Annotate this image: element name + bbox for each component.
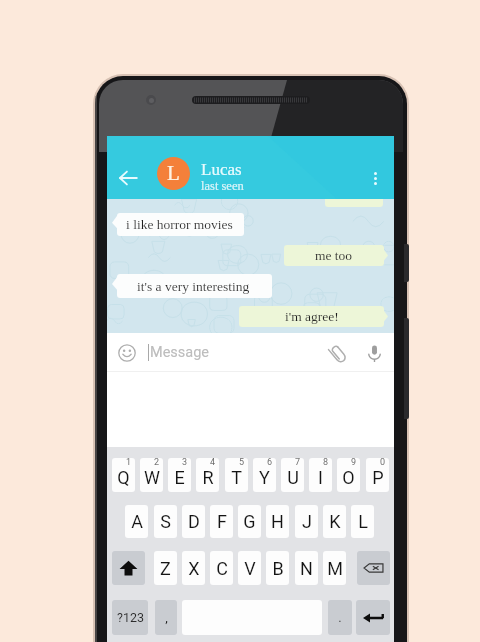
button[interactable]: U [281,458,304,492]
button[interactable]: K [323,505,346,538]
staticText: S [160,511,171,532]
staticText: E [174,467,185,488]
button[interactable]: P [366,458,389,492]
staticText: R [202,467,214,488]
staticText: X [188,558,200,579]
staticText: F [217,511,227,532]
button[interactable]: Z [154,551,177,585]
staticText: P [372,467,384,488]
button[interactable]: W [140,458,163,492]
staticText: 2 [154,458,160,468]
button[interactable]: X [182,551,205,585]
staticText: O [342,467,355,488]
staticText: , [165,610,168,625]
staticText: 5 [239,458,245,468]
button[interactable]: O [337,458,360,492]
staticText: W [144,467,160,488]
button[interactable]: M [323,551,346,585]
button[interactable]: Emoji [117,343,137,363]
staticText: L [167,161,180,184]
staticText: I [318,467,323,488]
staticText: 7 [295,458,301,468]
button[interactable]: B [266,551,289,585]
button[interactable]: I [309,458,332,492]
staticText: 0 [380,458,386,468]
staticText: J [302,511,312,532]
button[interactable]: me too [284,245,384,266]
staticText: 4 [210,458,216,468]
button[interactable]: i like horror movies [117,213,244,236]
button[interactable]: A [125,505,148,538]
staticText: Z [160,558,171,579]
button[interactable]: S [154,505,177,538]
staticText: me too [315,248,353,263]
button[interactable]: D [182,505,205,538]
button[interactable]: F [210,505,233,538]
button[interactable]: Contact avatar [157,157,190,190]
staticText: A [131,511,143,532]
button[interactable]: Backspace [357,551,390,585]
staticText: 3 [182,458,188,468]
button[interactable]: V [238,551,261,585]
button[interactable]: E [168,458,191,492]
button[interactable]: C [210,551,233,585]
button[interactable]: R [196,458,219,492]
button[interactable]: , [155,600,177,635]
staticText: 9 [351,458,357,468]
staticText: i like horror movies [126,217,233,232]
staticText: 1 [126,458,132,468]
staticText: G [243,511,256,532]
button[interactable]: Shift [112,551,145,585]
button[interactable]: G [238,505,261,538]
button[interactable]: i'm agree! [239,306,384,327]
staticText: B [272,558,284,579]
button[interactable]: More options [361,160,389,196]
staticText: last seen [201,179,244,193]
button[interactable]: Attach file [325,341,349,365]
button[interactable]: Q [112,458,135,492]
staticText: . [338,610,342,625]
staticText: ?123 [117,610,144,625]
button[interactable]: Voice message [362,341,386,365]
staticText: M [327,558,343,579]
button[interactable]: N [295,551,318,585]
staticText: Y [259,467,270,488]
button[interactable]: ?123 [112,600,148,635]
staticText: 8 [323,458,329,468]
staticText: N [300,558,313,579]
button[interactable]: T [225,458,248,492]
staticText: C [216,558,228,579]
staticText: Lucas [201,160,242,179]
button[interactable]: L [351,505,374,538]
staticText: 6 [267,458,273,468]
button[interactable]: Enter [356,600,390,635]
button[interactable]: Back [114,160,142,196]
staticText: T [231,467,242,488]
staticText: L [358,511,368,532]
staticText: H [271,511,284,532]
staticText: i'm agree! [285,309,339,324]
staticText: V [244,558,256,579]
staticText: Message [150,344,210,361]
button[interactable]: it's a very interesting [117,274,272,298]
button[interactable]: . [328,600,352,635]
staticText: D [188,511,200,532]
staticText: U [287,467,299,488]
button[interactable]: J [295,505,318,538]
staticText: K [329,511,341,532]
button[interactable]: Y [253,458,276,492]
staticText: Q [117,467,130,488]
staticText: it's a very interesting [137,279,250,294]
button[interactable]: H [266,505,289,538]
